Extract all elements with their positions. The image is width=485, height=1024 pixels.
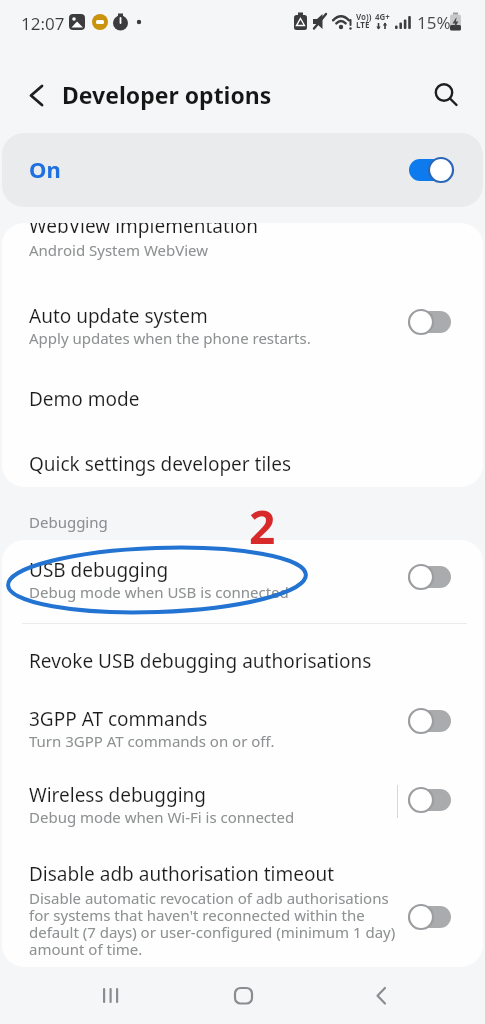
staticText: Debugging	[29, 512, 108, 532]
button[interactable]	[2, 857, 483, 967]
button[interactable]	[406, 156, 454, 184]
staticText: 3GPP AT commands	[29, 706, 208, 732]
staticText: 15%	[417, 11, 451, 34]
button[interactable]	[2, 433, 483, 487]
button[interactable]: On	[2, 133, 483, 207]
staticText: default (7 days) or user-configured (min…	[29, 922, 396, 942]
button[interactable]	[406, 308, 454, 336]
button[interactable]	[2, 771, 483, 857]
button[interactable]	[2, 623, 483, 685]
button[interactable]	[2, 540, 483, 623]
button[interactable]	[406, 786, 454, 814]
staticText: Debug mode when USB is connected	[29, 582, 289, 602]
staticText: WebView implementation	[29, 223, 258, 239]
staticText: Android System WebView	[29, 240, 209, 260]
staticText: USB debugging	[29, 557, 169, 583]
staticText: Quick settings developer tiles	[29, 451, 292, 477]
staticText: On	[29, 154, 61, 184]
button[interactable]	[406, 707, 454, 735]
button[interactable]	[2, 285, 483, 371]
staticText: Apply updates when the phone restarts.	[29, 328, 311, 348]
staticText: Wireless debugging	[29, 782, 207, 808]
staticText: 4G+	[375, 11, 390, 22]
button[interactable]	[24, 80, 48, 110]
button[interactable]	[2, 685, 483, 771]
staticText: 2	[249, 495, 276, 558]
staticText: Developer options	[62, 79, 272, 110]
staticText: 12:07	[21, 12, 65, 35]
staticText: LTE	[356, 19, 370, 30]
staticText: Debug mode when Wi-Fi is connected	[29, 807, 295, 827]
button[interactable]	[368, 984, 394, 1008]
staticText: Revoke USB debugging authorisations	[29, 648, 372, 674]
staticText: amount of time.	[29, 939, 143, 959]
staticText: Disable adb authorisation timeout	[29, 861, 335, 887]
button[interactable]	[430, 78, 462, 110]
staticText: for systems that haven't reconnected wit…	[29, 905, 365, 925]
button[interactable]	[2, 371, 483, 433]
staticText: Vo))	[356, 11, 372, 22]
staticText: Disable automatic revocation of adb auth…	[29, 888, 389, 908]
button[interactable]	[96, 984, 124, 1008]
staticText: Turn 3GPP AT commands on or off.	[29, 731, 275, 751]
button[interactable]	[2, 223, 483, 285]
staticText: Auto update system	[29, 303, 208, 329]
staticText: Demo mode	[29, 386, 140, 412]
button[interactable]	[406, 903, 454, 931]
button[interactable]	[406, 563, 454, 591]
button[interactable]	[231, 984, 257, 1008]
